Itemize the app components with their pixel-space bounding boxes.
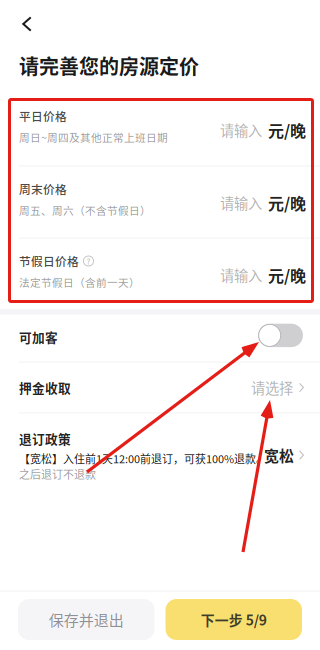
staticText: 可加客 [19, 328, 58, 346]
staticText: 请输入 [220, 265, 262, 285]
button[interactable]: 退订政策 [0, 413, 320, 491]
button[interactable]: 可加客 [258, 315, 303, 347]
staticText: 宽松 [264, 444, 294, 466]
staticText: 下一步 5/9 [201, 609, 267, 630]
staticText: 周末价格 [19, 180, 67, 197]
staticText: 法定节假日（含前一天） [19, 274, 140, 290]
staticText: 请输入 [220, 120, 262, 140]
staticText: 【宽松】入住前1天12:00前退订，可获100%退款。 [19, 451, 267, 466]
staticText: 周日~周四及其他正常上班日期 [19, 129, 168, 145]
staticText: 保存并退出 [49, 609, 124, 630]
staticText: 请输入 [220, 193, 262, 213]
staticText: 平日价格 [19, 107, 67, 124]
staticText: ? [86, 255, 90, 267]
button[interactable]: 保存并退出 [18, 599, 154, 640]
staticText: 节假日价格 [19, 252, 79, 269]
staticText: 之后退订不退款 [19, 466, 96, 482]
staticText: 元/晚 [268, 118, 306, 142]
staticText: 周五、周六（不含节假日） [19, 202, 151, 218]
button[interactable]: 返回 [0, 8, 49, 40]
button[interactable]: 下一步 5/9 [165, 599, 302, 640]
staticText: 押金收取 [19, 378, 71, 397]
staticText: 元/晚 [268, 191, 306, 214]
staticText: 退订政策 [19, 429, 71, 448]
staticText: 请完善您的房源定价 [19, 51, 199, 80]
button[interactable]: 押金收取 [0, 362, 320, 412]
staticText: 元/晚 [268, 263, 306, 287]
staticText: 请选择 [251, 377, 293, 398]
